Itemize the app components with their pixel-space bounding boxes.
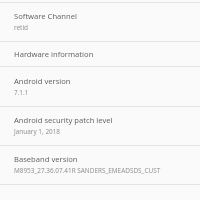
- button[interactable]: Software Channel: [0, 3, 200, 41]
- staticText: Android security patch level: [14, 115, 113, 125]
- staticText: Baseband version: [14, 154, 78, 164]
- button[interactable]: Baseband version: [0, 146, 200, 184]
- button[interactable]: Android security patch level: [0, 107, 200, 145]
- staticText: 7.1.1: [14, 88, 29, 97]
- staticText: Software Channel: [14, 11, 77, 21]
- button[interactable]: Android version: [0, 67, 200, 106]
- staticText: M8953_27.36.07.41R SANDERS_EMEADSDS_CUST: [14, 166, 161, 175]
- staticText: retid: [14, 23, 29, 32]
- button[interactable]: Hardware information: [0, 42, 200, 66]
- staticText: January 1, 2018: [14, 127, 61, 136]
- staticText: Android version: [14, 76, 71, 86]
- staticText: Hardware information: [14, 49, 94, 59]
